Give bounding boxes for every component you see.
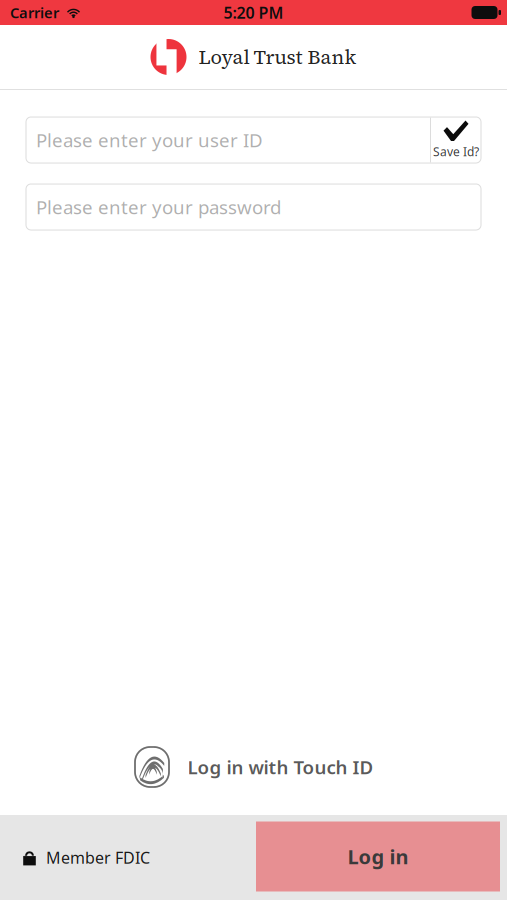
staticText: Log in <box>347 843 408 870</box>
button[interactable]: Log in with Touch ID <box>133 747 373 787</box>
staticText: Loyal Trust Bank <box>198 43 356 71</box>
staticText: Save Id? <box>433 143 479 159</box>
button[interactable]: Save Id? <box>431 117 481 162</box>
staticText: Please enter your user ID <box>36 128 263 152</box>
staticText: 5:20 PM <box>223 2 283 23</box>
staticText: Member FDIC <box>46 847 150 868</box>
staticText: Carrier <box>10 3 59 22</box>
staticText: Log in with Touch ID <box>187 755 373 779</box>
staticText: Please enter your password <box>36 195 281 219</box>
button[interactable]: Log in <box>256 821 500 891</box>
